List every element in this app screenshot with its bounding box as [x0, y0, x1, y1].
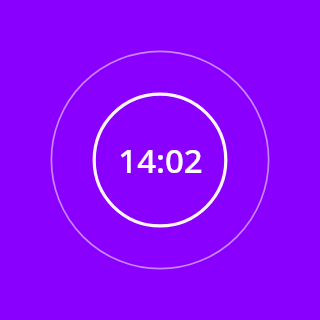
button[interactable]: Watch face showing 14:02 — [0, 0, 320, 320]
staticText: 14:02 — [118, 138, 203, 183]
